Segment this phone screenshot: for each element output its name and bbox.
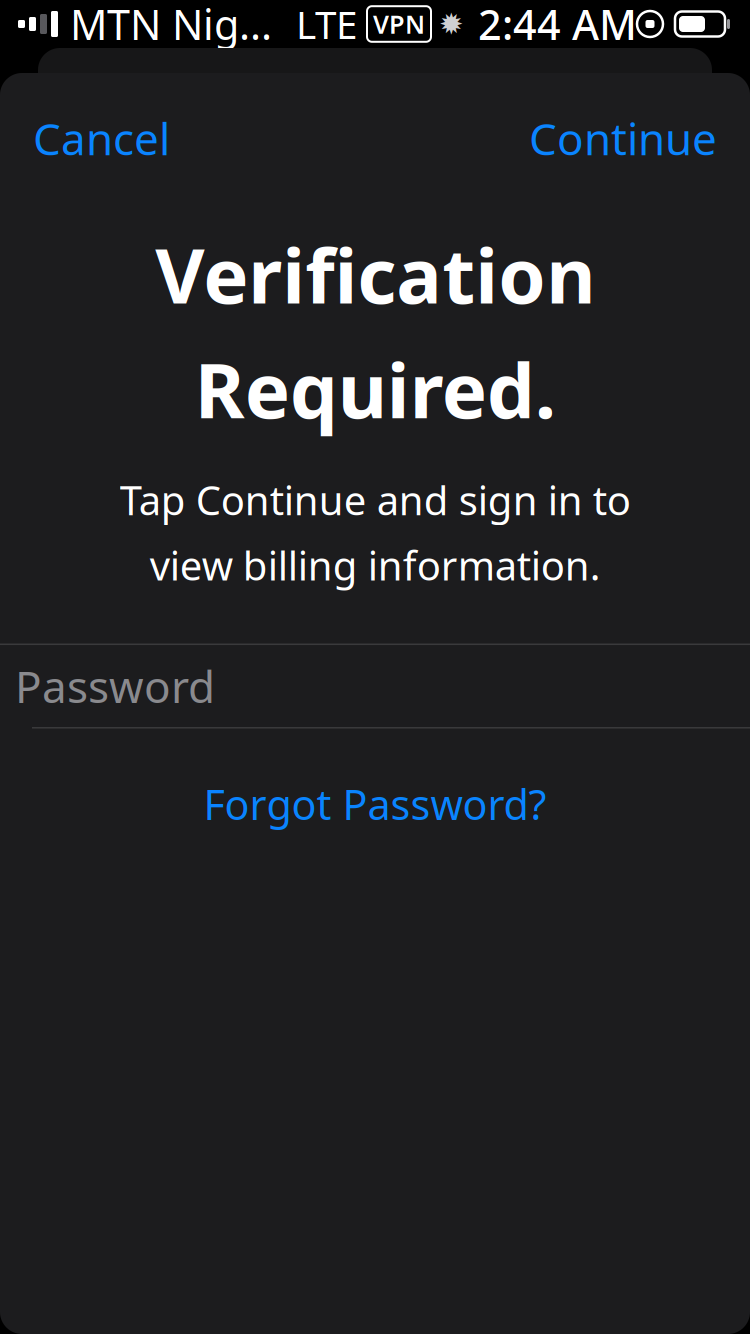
staticText: VPN bbox=[373, 7, 425, 41]
staticText: Tap Continue and sign in to view billing… bbox=[119, 473, 630, 591]
button[interactable]: Continue bbox=[496, 95, 750, 181]
staticText: LTE bbox=[296, 0, 357, 50]
staticText: Forgot Password? bbox=[203, 776, 546, 831]
staticText: 2:44 AM bbox=[478, 0, 637, 51]
staticText: Cancel bbox=[33, 109, 170, 167]
staticText: MTN Nig... bbox=[70, 0, 272, 51]
staticText: Verification Required. bbox=[155, 223, 595, 439]
staticText: Continue bbox=[529, 109, 717, 167]
button[interactable]: Forgot Password? bbox=[183, 764, 566, 843]
staticText: Password bbox=[15, 657, 215, 715]
staticText: ✹ bbox=[439, 7, 464, 41]
button[interactable]: Cancel bbox=[0, 95, 203, 181]
